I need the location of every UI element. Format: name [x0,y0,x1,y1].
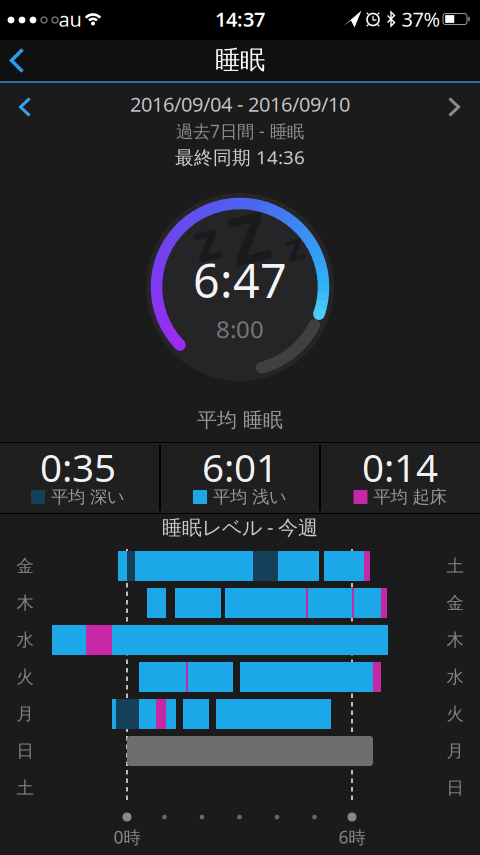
staticText: 睡眠 [215,44,265,75]
staticText: z [285,221,303,271]
button[interactable]: Next week [432,88,476,126]
staticText: 日 [446,777,463,799]
staticText: 木 [446,629,463,651]
staticText: 平均 浅い [213,486,287,508]
staticText: 火 [16,666,33,688]
staticText: 水 [446,666,463,688]
staticText: 睡眠レベル - 今週 [162,514,318,540]
staticText: 平均 睡眠 [197,408,283,432]
staticText: 木 [16,592,33,614]
staticText: 14:37 [215,6,265,32]
staticText: 6時 [338,825,365,848]
staticText: 0:35 [40,441,116,493]
staticText: 過去7日間 - 睡眠 [176,119,304,142]
staticText: 2016/09/04 - 2016/09/10 [130,91,350,117]
staticText: 月 [16,703,33,725]
staticText: 月 [446,740,463,762]
staticText: 0時 [113,825,140,848]
staticText: 火 [446,703,463,725]
staticText: 平均 起床 [373,486,446,508]
staticText: 6:01 [202,441,278,493]
staticText: 水 [16,629,33,651]
staticText: 8:00 [216,313,264,345]
staticText: Z [229,193,268,281]
staticText: 37% [401,6,440,32]
staticText: z [193,205,219,275]
staticText: 日 [16,740,33,762]
staticText: 0:14 [362,441,438,493]
staticText: 土 [446,555,463,577]
staticText: 金 [16,555,33,577]
staticText: au [58,6,81,32]
staticText: 最終同期 14:36 [175,145,305,169]
staticText: 金 [446,592,463,614]
button[interactable]: Back [0,40,35,81]
staticText: 6:47 [193,249,287,311]
staticText: 平均 深い [51,486,125,508]
staticText: 土 [16,777,33,799]
button[interactable]: Previous week [3,88,47,126]
